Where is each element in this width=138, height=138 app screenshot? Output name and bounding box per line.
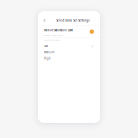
- button[interactable]: Back: [41, 17, 47, 23]
- staticText: Mobile Saturation Level: [44, 29, 73, 32]
- staticText: High: [44, 57, 51, 60]
- staticText: Low: [44, 44, 48, 48]
- button[interactable]: Medium: [38, 49, 100, 55]
- staticText: Medium: [44, 51, 54, 54]
- staticText: Select Data Set Settings: [56, 19, 89, 22]
- button[interactable]: Low: [38, 43, 100, 49]
- staticText: Lorem ipsum dolor: [44, 34, 63, 37]
- button[interactable]: High: [38, 55, 100, 62]
- staticText: Saturation Level: [44, 38, 60, 41]
